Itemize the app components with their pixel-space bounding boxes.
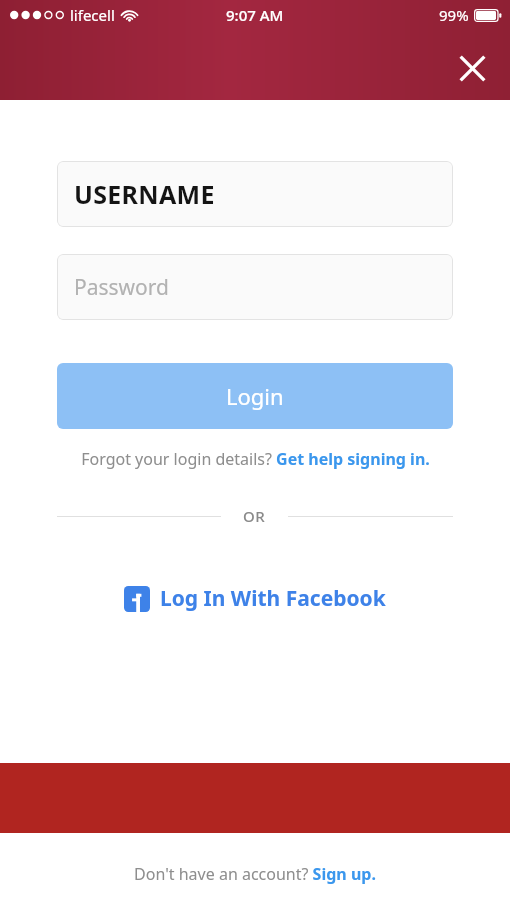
staticText: lifecell [70, 5, 115, 25]
button[interactable]: USERNAME [57, 161, 453, 227]
staticText: Login [226, 381, 284, 411]
staticText: OR [243, 506, 266, 526]
staticText: USERNAME [74, 177, 215, 211]
staticText: Password [74, 273, 169, 302]
staticText: Log In With Facebook [160, 584, 386, 613]
button[interactable]: Don't have an account? Sign up. [0, 855, 510, 893]
button[interactable]: Login [57, 363, 453, 429]
staticText: Don't have an account? Sign up. [134, 863, 376, 885]
button[interactable]: Log In With Facebook [57, 584, 453, 613]
staticText: 99% [439, 5, 469, 25]
staticText: 9:07 AM [226, 5, 284, 25]
button[interactable]: Forgot your login details? Get help sign… [57, 448, 453, 470]
button[interactable]: Close [446, 42, 498, 94]
staticText: Forgot your login details? Get help sign… [81, 448, 430, 470]
button[interactable]: Password [57, 254, 453, 320]
